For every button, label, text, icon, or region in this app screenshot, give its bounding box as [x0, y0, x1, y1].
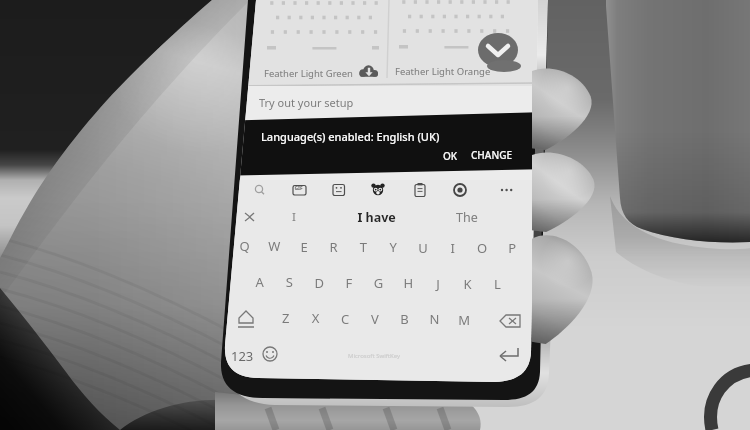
button[interactable]: Z: [272, 303, 300, 333]
button[interactable]: P: [498, 231, 526, 261]
button[interactable]: I: [438, 231, 466, 261]
button[interactable]: V: [361, 303, 389, 333]
button[interactable]: I: [282, 205, 308, 229]
button[interactable]: Numbers: [226, 340, 258, 370]
button[interactable]: GIF: [288, 179, 312, 202]
button[interactable]: Stickers: [327, 179, 351, 202]
button[interactable]: R: [320, 231, 348, 261]
button[interactable]: Collapse theme picker: [478, 33, 518, 73]
button[interactable]: Shift: [232, 305, 262, 335]
button[interactable]: U: [409, 231, 437, 261]
button[interactable]: Q: [231, 231, 259, 261]
button[interactable]: I have: [350, 205, 406, 229]
button[interactable]: CHANGE: [467, 142, 519, 164]
button[interactable]: X: [301, 303, 329, 333]
button[interactable]: Clipboard: [408, 179, 432, 202]
button[interactable]: J: [424, 267, 452, 297]
button[interactable]: Settings: [448, 179, 473, 202]
button[interactable]: B: [390, 303, 418, 333]
button[interactable]: Try out your setup: [230, 88, 535, 120]
button[interactable]: Backspace: [496, 305, 526, 335]
button[interactable]: K: [453, 267, 481, 297]
button[interactable]: S: [275, 267, 303, 297]
button[interactable]: D: [305, 267, 333, 297]
button[interactable]: Download theme: [359, 62, 381, 82]
button[interactable]: N: [420, 303, 448, 333]
button[interactable]: T: [349, 231, 377, 261]
button[interactable]: E: [290, 231, 318, 261]
button[interactable]: O: [468, 231, 496, 261]
button[interactable]: W: [260, 231, 288, 261]
button[interactable]: A: [246, 267, 274, 297]
button[interactable]: H: [394, 267, 422, 297]
button[interactable]: Emoji: [366, 179, 390, 202]
button[interactable]: Emoji keyboard: [257, 340, 285, 370]
button[interactable]: Search: [248, 179, 273, 202]
button[interactable]: C: [331, 303, 359, 333]
button[interactable]: More options: [494, 179, 518, 202]
button[interactable]: Feather Light Green theme: [258, 0, 388, 88]
button[interactable]: Enter: [492, 338, 526, 370]
button[interactable]: OK: [437, 143, 465, 165]
button[interactable]: Feather Light Orange theme: [392, 0, 532, 86]
button[interactable]: M: [450, 303, 478, 333]
button[interactable]: F: [335, 267, 363, 297]
button[interactable]: The: [450, 205, 488, 229]
button[interactable]: Y: [379, 231, 407, 261]
button[interactable]: L: [483, 267, 511, 297]
button[interactable]: G: [364, 267, 392, 297]
